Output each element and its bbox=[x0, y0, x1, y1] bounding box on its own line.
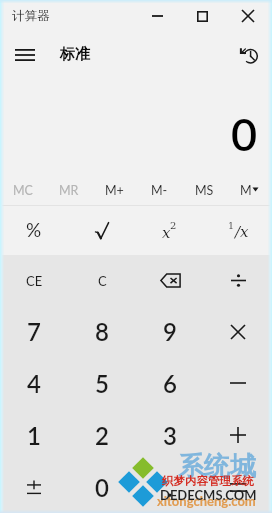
staticText: 0 bbox=[95, 473, 109, 502]
button[interactable]: MS bbox=[182, 178, 227, 205]
button[interactable]: Navigation menu bbox=[4, 34, 46, 72]
staticText: x bbox=[162, 224, 171, 241]
staticText: M+ bbox=[105, 183, 124, 198]
staticText: 计算器 bbox=[12, 8, 50, 24]
staticText: 0 bbox=[231, 107, 258, 161]
staticText: /x bbox=[235, 223, 249, 240]
button[interactable]: % bbox=[0, 206, 68, 255]
staticText: 2 bbox=[95, 421, 109, 450]
button[interactable]: 3 bbox=[136, 409, 204, 461]
button[interactable]: Minimize bbox=[134, 0, 180, 30]
button[interactable]: MR bbox=[46, 178, 92, 205]
button[interactable]: M- bbox=[137, 178, 182, 205]
button[interactable]: 9 bbox=[136, 306, 204, 357]
staticText: 9 bbox=[163, 317, 177, 346]
button[interactable]: 5 bbox=[68, 357, 136, 409]
button[interactable]: C bbox=[68, 255, 136, 306]
staticText: C bbox=[98, 273, 107, 289]
staticText: 7 bbox=[27, 317, 41, 346]
staticText: 6 bbox=[163, 369, 177, 398]
staticText: . bbox=[167, 473, 173, 502]
button[interactable]: 0 bbox=[68, 461, 136, 513]
button[interactable]: Divide bbox=[204, 255, 272, 306]
staticText: CE bbox=[26, 273, 43, 289]
staticText: 2 bbox=[170, 220, 177, 232]
staticText: DEDECMS.COM bbox=[160, 487, 257, 503]
button[interactable]: MC bbox=[0, 178, 46, 205]
staticText: 3 bbox=[163, 421, 177, 450]
staticText: 1 bbox=[27, 421, 41, 450]
staticText: MR bbox=[59, 183, 79, 198]
staticText: 织梦内容管理系统 bbox=[162, 474, 254, 488]
button[interactable]: 1 bbox=[0, 409, 68, 461]
button[interactable]: Square root bbox=[68, 206, 136, 255]
button[interactable]: Reciprocal bbox=[204, 206, 272, 255]
staticText: 5 bbox=[95, 369, 109, 398]
staticText: 标准 bbox=[60, 45, 90, 64]
staticText: 4 bbox=[27, 369, 41, 398]
button[interactable]: 7 bbox=[0, 306, 68, 357]
staticText: % bbox=[26, 218, 42, 241]
button[interactable]: . bbox=[136, 461, 204, 513]
button[interactable]: 4 bbox=[0, 357, 68, 409]
staticText: 8 bbox=[95, 317, 109, 346]
button[interactable]: Plus bbox=[204, 409, 272, 461]
staticText: MS bbox=[195, 183, 214, 198]
button[interactable]: Close bbox=[226, 0, 272, 30]
staticText: 系统城 bbox=[178, 450, 256, 483]
staticText: 1 bbox=[228, 220, 235, 231]
button[interactable]: Backspace bbox=[136, 255, 204, 306]
button[interactable]: M+ bbox=[92, 178, 137, 205]
staticText: xitongcheng.com bbox=[157, 493, 256, 509]
button[interactable]: 8 bbox=[68, 306, 136, 357]
button[interactable]: History bbox=[229, 34, 267, 72]
staticText: MC bbox=[13, 183, 33, 198]
button[interactable]: CE bbox=[0, 255, 68, 306]
button[interactable]: Positive negative bbox=[0, 461, 68, 513]
button[interactable]: Multiply bbox=[204, 306, 272, 357]
button[interactable]: Equals bbox=[204, 461, 272, 513]
button[interactable]: 6 bbox=[136, 357, 204, 409]
button[interactable]: 2 bbox=[68, 409, 136, 461]
staticText: M- bbox=[151, 183, 168, 198]
button[interactable]: Memory options bbox=[227, 178, 272, 205]
button[interactable]: Square bbox=[136, 206, 204, 255]
staticText: M bbox=[240, 183, 252, 198]
button[interactable]: Maximize bbox=[180, 0, 226, 30]
button[interactable]: Minus bbox=[204, 357, 272, 409]
